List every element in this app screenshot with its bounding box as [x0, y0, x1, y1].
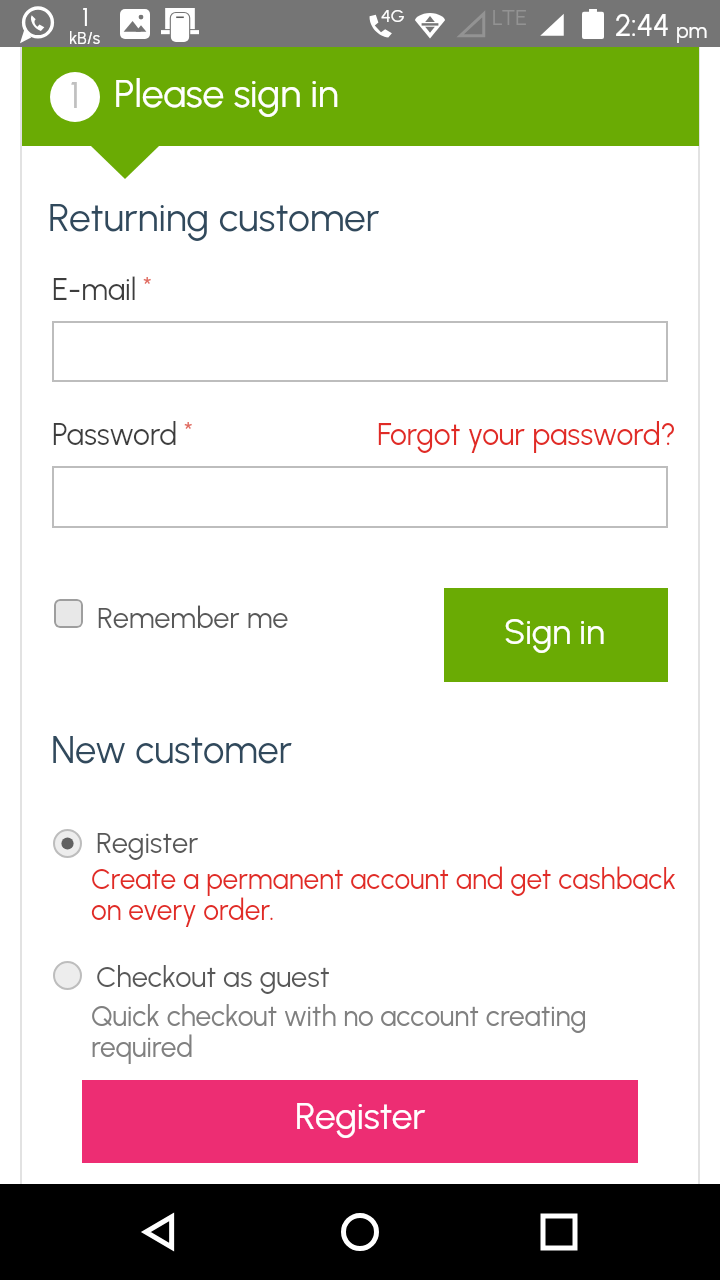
- button[interactable]: Recent apps: [521, 1194, 597, 1270]
- staticText: Please sign in: [114, 70, 339, 117]
- staticText: 1: [70, 74, 80, 117]
- staticText: 1: [82, 1, 89, 32]
- staticText: 2:44: [615, 7, 670, 43]
- staticText: Register: [295, 1094, 426, 1138]
- staticText: 4G: [381, 5, 405, 27]
- button[interactable]: Remember me: [54, 598, 289, 633]
- button[interactable]: [52, 466, 668, 528]
- staticText: E-mail: [52, 271, 137, 307]
- staticText: Remember me: [97, 600, 289, 635]
- button[interactable]: Register: [82, 1080, 638, 1163]
- staticText: Password: [52, 416, 178, 452]
- button[interactable]: [52, 321, 668, 382]
- staticText: kB/s: [69, 28, 101, 44]
- staticText: Checkout as guest: [96, 959, 330, 994]
- staticText: Quick checkout with no account creating …: [91, 999, 587, 1064]
- staticText: Sign in: [504, 611, 605, 653]
- staticText: New customer: [51, 727, 293, 773]
- staticText: Register: [96, 825, 199, 860]
- button[interactable]: Forgot your password?: [377, 416, 676, 452]
- button[interactable]: 1: [22, 47, 699, 146]
- staticText: *: [143, 271, 152, 301]
- staticText: Create a permanent account and get cashb…: [91, 862, 677, 927]
- button[interactable]: Register: [53, 826, 199, 861]
- button[interactable]: Sign in: [444, 588, 668, 682]
- staticText: LTE: [492, 4, 528, 30]
- button[interactable]: Checkout as guest: [53, 960, 330, 995]
- staticText: *: [184, 416, 193, 446]
- staticText: pm: [676, 18, 708, 43]
- button[interactable]: Home: [322, 1194, 398, 1270]
- staticText: Returning customer: [48, 194, 380, 241]
- button[interactable]: Back: [123, 1194, 199, 1270]
